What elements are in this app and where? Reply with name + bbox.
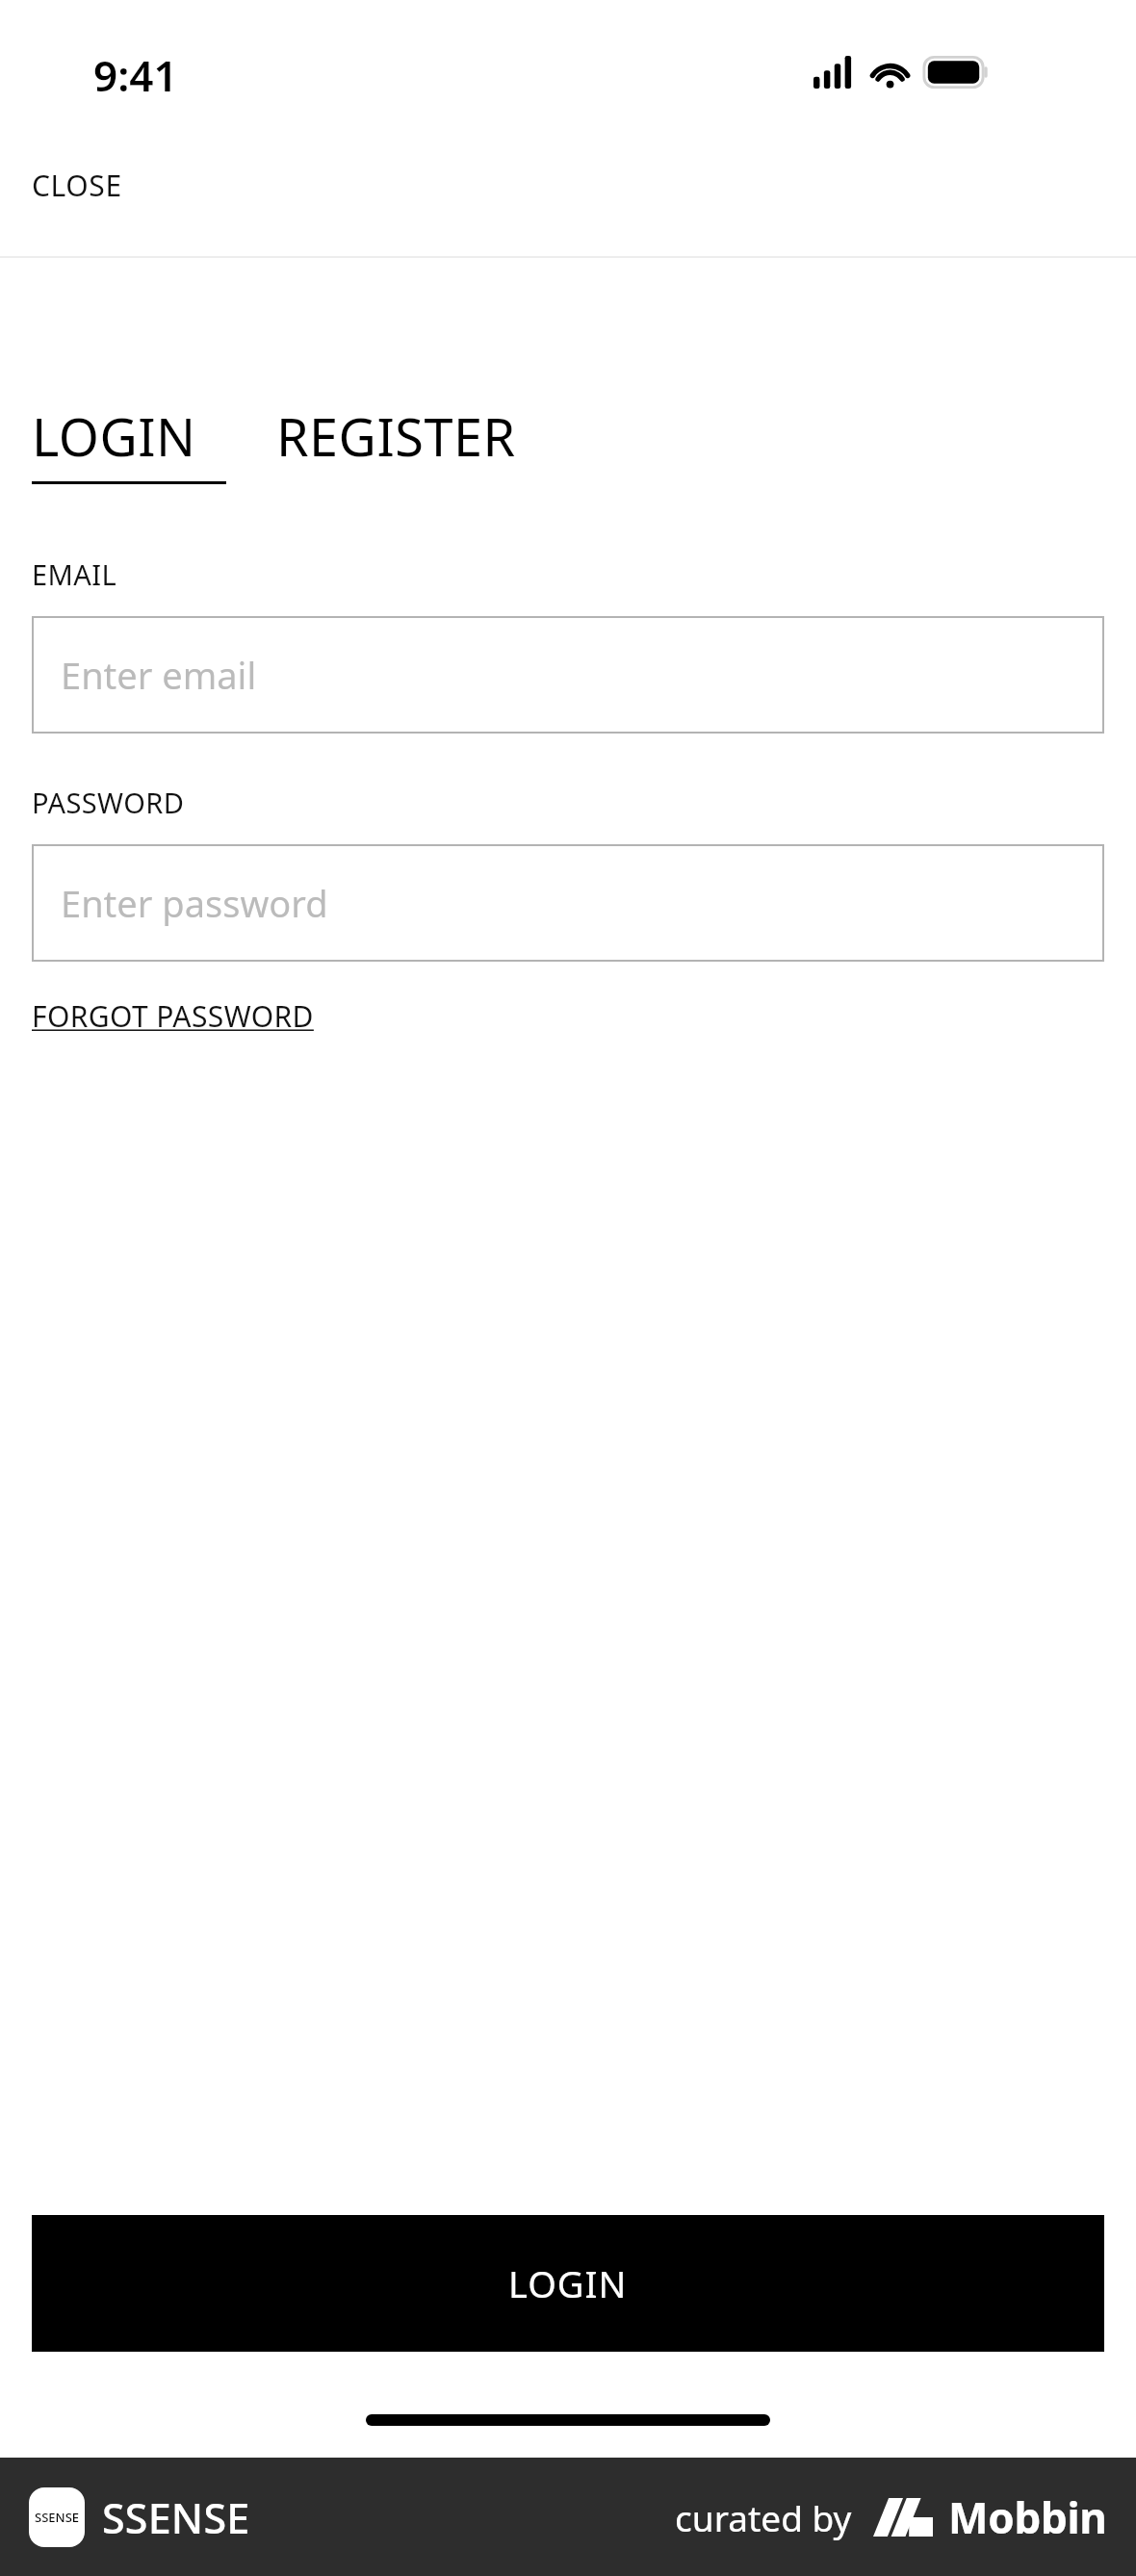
button[interactable]: Enter password <box>32 844 1104 962</box>
staticText: curated by <box>675 2493 852 2541</box>
staticText: 9:41 <box>93 46 178 104</box>
button[interactable]: LOGIN <box>32 400 226 484</box>
button[interactable]: Enter email <box>32 616 1104 734</box>
staticText: Mobbin <box>948 2488 1107 2546</box>
button[interactable]: CLOSE <box>32 162 122 209</box>
button[interactable]: LOGIN <box>32 2215 1104 2352</box>
staticText: SSENSE <box>35 2509 80 2526</box>
staticText: FORGOT PASSWORD <box>32 996 314 1036</box>
staticText: Enter password <box>61 878 328 928</box>
button[interactable]: REGISTER <box>276 400 516 484</box>
staticText: Enter email <box>61 650 257 700</box>
button[interactable]: SSENSE <box>29 2487 250 2547</box>
staticText: PASSWORD <box>32 784 185 821</box>
staticText: EMAIL <box>32 555 116 593</box>
button[interactable]: FORGOT PASSWORD <box>32 996 314 1036</box>
other: Mobbin logo <box>873 2498 933 2537</box>
staticText: LOGIN <box>32 400 196 472</box>
staticText: SSENSE <box>102 2489 250 2546</box>
staticText: LOGIN <box>508 2258 628 2308</box>
staticText: CLOSE <box>32 166 122 205</box>
button[interactable]: curated by <box>675 2488 1107 2546</box>
staticText: REGISTER <box>276 400 516 472</box>
